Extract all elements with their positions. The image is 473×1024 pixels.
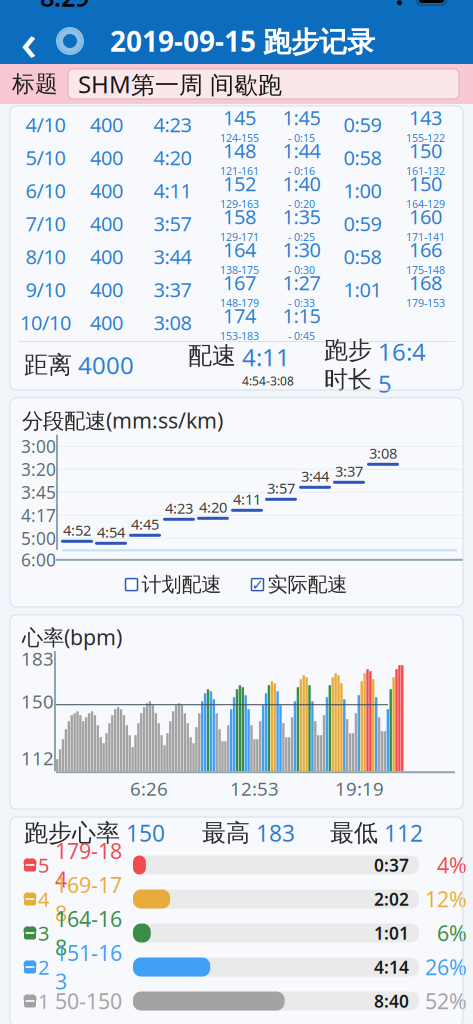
button[interactable]: Back <box>12 18 46 64</box>
staticText: 129-171 <box>220 230 259 244</box>
staticText: 4:11 <box>242 341 290 373</box>
staticText: 1:01 <box>343 276 381 303</box>
staticText: 150 <box>21 689 54 714</box>
staticText: 10/10 <box>20 309 71 336</box>
staticText: 标题 <box>12 70 58 98</box>
staticText: 3:57 <box>267 478 295 498</box>
button[interactable]: 计划配速 <box>125 572 221 597</box>
staticText: 1 <box>38 988 49 1014</box>
staticText: 3:45 <box>21 481 56 504</box>
staticText: 6% <box>437 919 467 947</box>
staticText: 148-179 <box>220 296 259 310</box>
staticText: 400 <box>90 177 123 204</box>
staticText: 400 <box>90 144 123 171</box>
staticText: 8/10 <box>25 243 65 270</box>
staticText: 150 <box>126 818 165 848</box>
staticText: 3:37 <box>153 276 191 303</box>
staticText: - 0:30 <box>288 263 315 277</box>
staticText: 4:14 <box>374 955 409 978</box>
staticText: 8:29 <box>40 0 89 14</box>
staticText: - 0:16 <box>288 164 315 178</box>
staticText: 9/10 <box>25 276 65 303</box>
staticText: - 0:20 <box>288 197 315 211</box>
staticText: 1:01 <box>374 921 409 944</box>
staticText: 155-122 <box>406 131 445 145</box>
staticText: 6/10 <box>25 177 65 204</box>
staticText: 148 <box>223 137 256 164</box>
staticText: 169-178 <box>55 871 122 927</box>
staticText: ✓ <box>251 576 263 593</box>
button[interactable]: SHM第一周 间歇跑 <box>68 69 459 99</box>
staticText: 4:17 <box>21 504 56 527</box>
staticText: 4:23 <box>165 498 193 518</box>
staticText: 3:00 <box>21 435 56 458</box>
staticText: 3:37 <box>335 461 363 481</box>
staticText: 179-184 <box>55 837 122 893</box>
staticText: 4 <box>38 886 49 912</box>
staticText: 4:23 <box>153 111 191 138</box>
staticText: 距离 <box>24 350 72 380</box>
staticText: 161-132 <box>406 164 445 178</box>
staticText: 4:20 <box>199 497 227 517</box>
staticText: 160 <box>409 203 442 230</box>
staticText: 164 <box>223 236 256 263</box>
staticText: 150 <box>409 170 442 197</box>
staticText: 179-153 <box>406 296 445 310</box>
staticText: 112 <box>21 746 54 770</box>
staticText: 121-161 <box>220 164 259 178</box>
staticText: 3:44 <box>153 243 191 270</box>
staticText: 400 <box>90 309 123 336</box>
staticText: 4000 <box>78 349 134 381</box>
staticText: 19:19 <box>335 776 384 801</box>
staticText: 151-163 <box>55 939 122 995</box>
staticText: 2019-09-15 跑步记录 <box>110 22 375 60</box>
staticText: 5:00 <box>21 527 56 550</box>
staticText: - 0:45 <box>288 329 315 343</box>
staticText: 400 <box>90 111 123 138</box>
staticText: 145 <box>223 104 256 131</box>
button[interactable]: ✓ <box>251 572 347 597</box>
staticText: 143 <box>409 104 442 131</box>
staticText: 6:00 <box>21 548 56 571</box>
staticText: 1:30 <box>282 236 320 263</box>
staticText: 4/10 <box>25 111 65 138</box>
staticText: 12:53 <box>230 776 279 801</box>
staticText: 心率(bpm) <box>22 623 122 651</box>
staticText: 3:57 <box>153 210 191 237</box>
staticText: 52% <box>425 987 467 1015</box>
staticText: 129-163 <box>220 197 259 211</box>
staticText: - 0:33 <box>288 296 315 310</box>
staticText: 0:59 <box>343 210 381 237</box>
staticText: 167 <box>223 269 256 296</box>
staticText: 26% <box>425 953 467 981</box>
staticText: 50-150 <box>55 987 122 1015</box>
staticText: 0:58 <box>343 144 381 171</box>
staticText: 4:52 <box>63 520 91 540</box>
staticText: 183 <box>256 818 295 848</box>
staticText: 计划配速 <box>141 572 221 597</box>
staticText: 1:44 <box>282 137 320 164</box>
staticText: 4:11 <box>153 177 191 204</box>
staticText: 1:35 <box>282 203 320 230</box>
staticText: 3:08 <box>369 443 397 463</box>
staticText: 174 <box>223 302 256 329</box>
staticText: 0:58 <box>343 243 381 270</box>
staticText: 5/10 <box>25 144 65 171</box>
staticText: 4:54 <box>97 522 125 542</box>
staticText: 配速 <box>188 341 236 371</box>
staticText: 0:59 <box>343 111 381 138</box>
staticText: 171-141 <box>406 230 445 244</box>
staticText: 7/10 <box>25 210 65 237</box>
staticText: 12% <box>425 885 467 913</box>
staticText: ‹ <box>20 7 37 75</box>
staticText: 2 <box>38 954 49 980</box>
staticText: 1:27 <box>282 269 320 296</box>
staticText: - 0:25 <box>288 230 315 244</box>
staticText: 实际配速 <box>267 572 347 597</box>
staticText: 3:20 <box>21 458 56 481</box>
staticText: 16:45 <box>378 335 426 399</box>
staticText: 分段配速(mm:ss/km) <box>22 406 223 434</box>
button[interactable]: Settings <box>46 18 94 64</box>
staticText: 112 <box>384 818 423 848</box>
